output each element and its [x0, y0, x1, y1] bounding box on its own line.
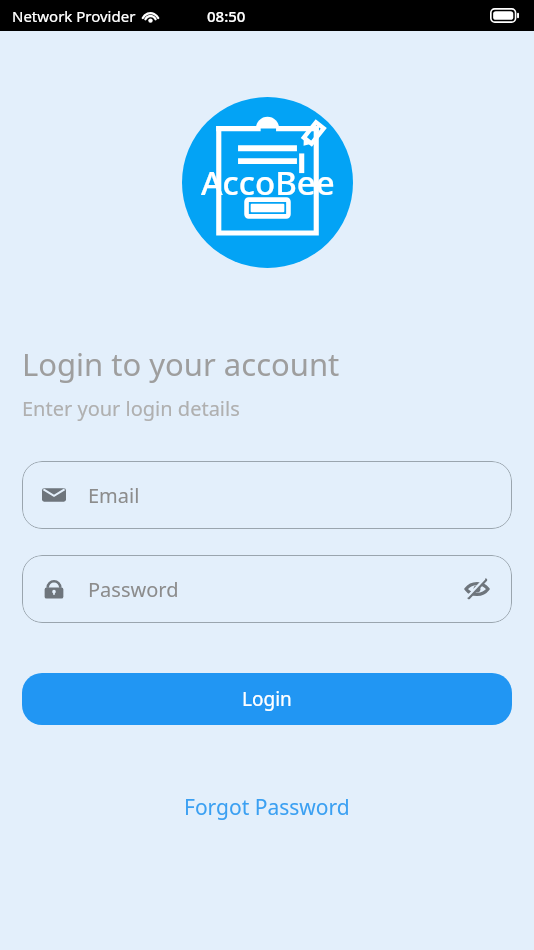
button[interactable]: Login	[22, 673, 512, 725]
button[interactable]: Forgot Password	[0, 787, 534, 828]
staticText: Enter your login details	[22, 395, 240, 422]
staticText: Password	[88, 576, 179, 603]
button[interactable]: Password	[22, 555, 512, 623]
button[interactable]: Show password	[462, 574, 492, 604]
staticText: AccoBee	[201, 160, 335, 205]
staticText: Email	[88, 482, 140, 509]
button[interactable]: Email	[22, 461, 512, 529]
staticText: Login	[242, 686, 292, 712]
staticText: Login to your account	[22, 343, 340, 385]
staticText: Network Provider	[12, 6, 136, 26]
staticText: 08:50	[207, 6, 246, 26]
staticText: Forgot Password	[184, 793, 350, 822]
